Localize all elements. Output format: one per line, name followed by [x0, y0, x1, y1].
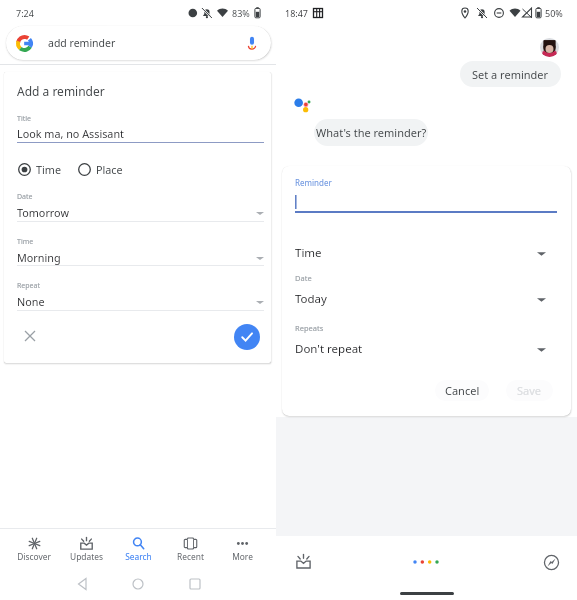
button[interactable]: add reminder	[6, 26, 271, 60]
button[interactable]: Updates	[291, 549, 316, 574]
staticText: Morning	[17, 250, 61, 265]
button[interactable]: Account	[540, 38, 559, 57]
staticText: Time	[17, 237, 34, 247]
button[interactable]: Time	[295, 245, 546, 261]
staticText: More	[232, 551, 253, 562]
staticText: add reminder	[48, 36, 116, 50]
button[interactable]: Today	[295, 291, 546, 307]
staticText: Date	[295, 273, 312, 283]
button[interactable]: Save reminder	[234, 324, 260, 350]
button[interactable]: Time	[18, 161, 61, 178]
other: Voice search	[245, 36, 259, 50]
button[interactable]: Date	[4, 192, 271, 232]
button[interactable]: What's the reminder?	[314, 119, 428, 146]
button[interactable]: Cancel	[18, 324, 42, 348]
staticText: Tomorrow	[17, 205, 69, 220]
staticText: Recent	[177, 551, 204, 562]
staticText: Title	[17, 114, 31, 124]
staticText: Reminder	[295, 177, 332, 188]
button[interactable]: Cancel	[435, 380, 489, 401]
button[interactable]: Recent	[164, 529, 216, 568]
staticText: Repeats	[295, 323, 324, 333]
staticText: Look ma, no Assisant	[17, 126, 124, 141]
staticText: Set a reminder	[472, 67, 549, 82]
button[interactable]: Repeat	[4, 281, 271, 321]
staticText: 7:24	[16, 7, 34, 19]
staticText: Cancel	[445, 383, 480, 398]
button[interactable]: Explore	[539, 550, 563, 574]
staticText: Repeat	[17, 281, 41, 291]
button[interactable]: Set a reminder	[460, 61, 561, 87]
button[interactable]: Search	[112, 529, 164, 568]
staticText: None	[17, 294, 45, 309]
button[interactable]: Discover	[8, 529, 60, 568]
button[interactable]: Google Assistant	[406, 550, 446, 574]
button[interactable]: Save	[506, 380, 553, 401]
staticText: Updates	[70, 551, 103, 562]
staticText: 83%	[232, 7, 250, 19]
staticText: 50%	[545, 7, 563, 19]
staticText: Add a reminder	[17, 83, 105, 99]
button[interactable]: Time	[4, 237, 271, 277]
staticText: 18:47	[285, 7, 309, 19]
staticText: Time	[36, 162, 61, 177]
button[interactable]: Updates	[60, 529, 112, 568]
staticText: Date	[17, 192, 33, 202]
staticText: Place	[96, 162, 123, 177]
staticText: Don't repeat	[295, 341, 363, 357]
button[interactable]: Place	[78, 161, 123, 178]
staticText: Save	[517, 383, 542, 398]
staticText: Time	[295, 245, 322, 261]
staticText: Search	[125, 551, 152, 562]
button[interactable]: Don't repeat	[295, 341, 546, 357]
staticText: What's the reminder?	[316, 125, 427, 140]
button[interactable]: More	[216, 529, 268, 568]
staticText: Today	[295, 291, 327, 307]
staticText: Discover	[17, 551, 51, 562]
